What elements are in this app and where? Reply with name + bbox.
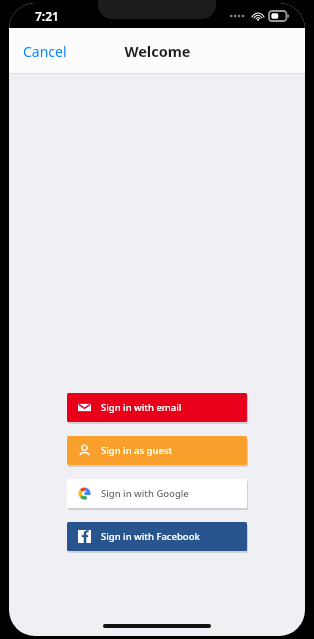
staticText: Sign in with Facebook xyxy=(101,530,200,543)
button[interactable]: Sign in with email xyxy=(67,393,247,422)
staticText: Cancel xyxy=(23,42,67,61)
staticText: 7:21 xyxy=(35,8,59,24)
button[interactable]: Sign in with Facebook xyxy=(67,522,247,551)
staticText: Welcome xyxy=(124,41,191,61)
button[interactable]: Sign in with Google xyxy=(67,479,247,508)
staticText: Sign in with email xyxy=(101,401,182,414)
staticText: Sign in as guest xyxy=(101,444,173,457)
button[interactable]: Sign in as guest xyxy=(67,436,247,465)
button[interactable]: Cancel xyxy=(9,34,81,69)
staticText: Sign in with Google xyxy=(101,487,189,500)
